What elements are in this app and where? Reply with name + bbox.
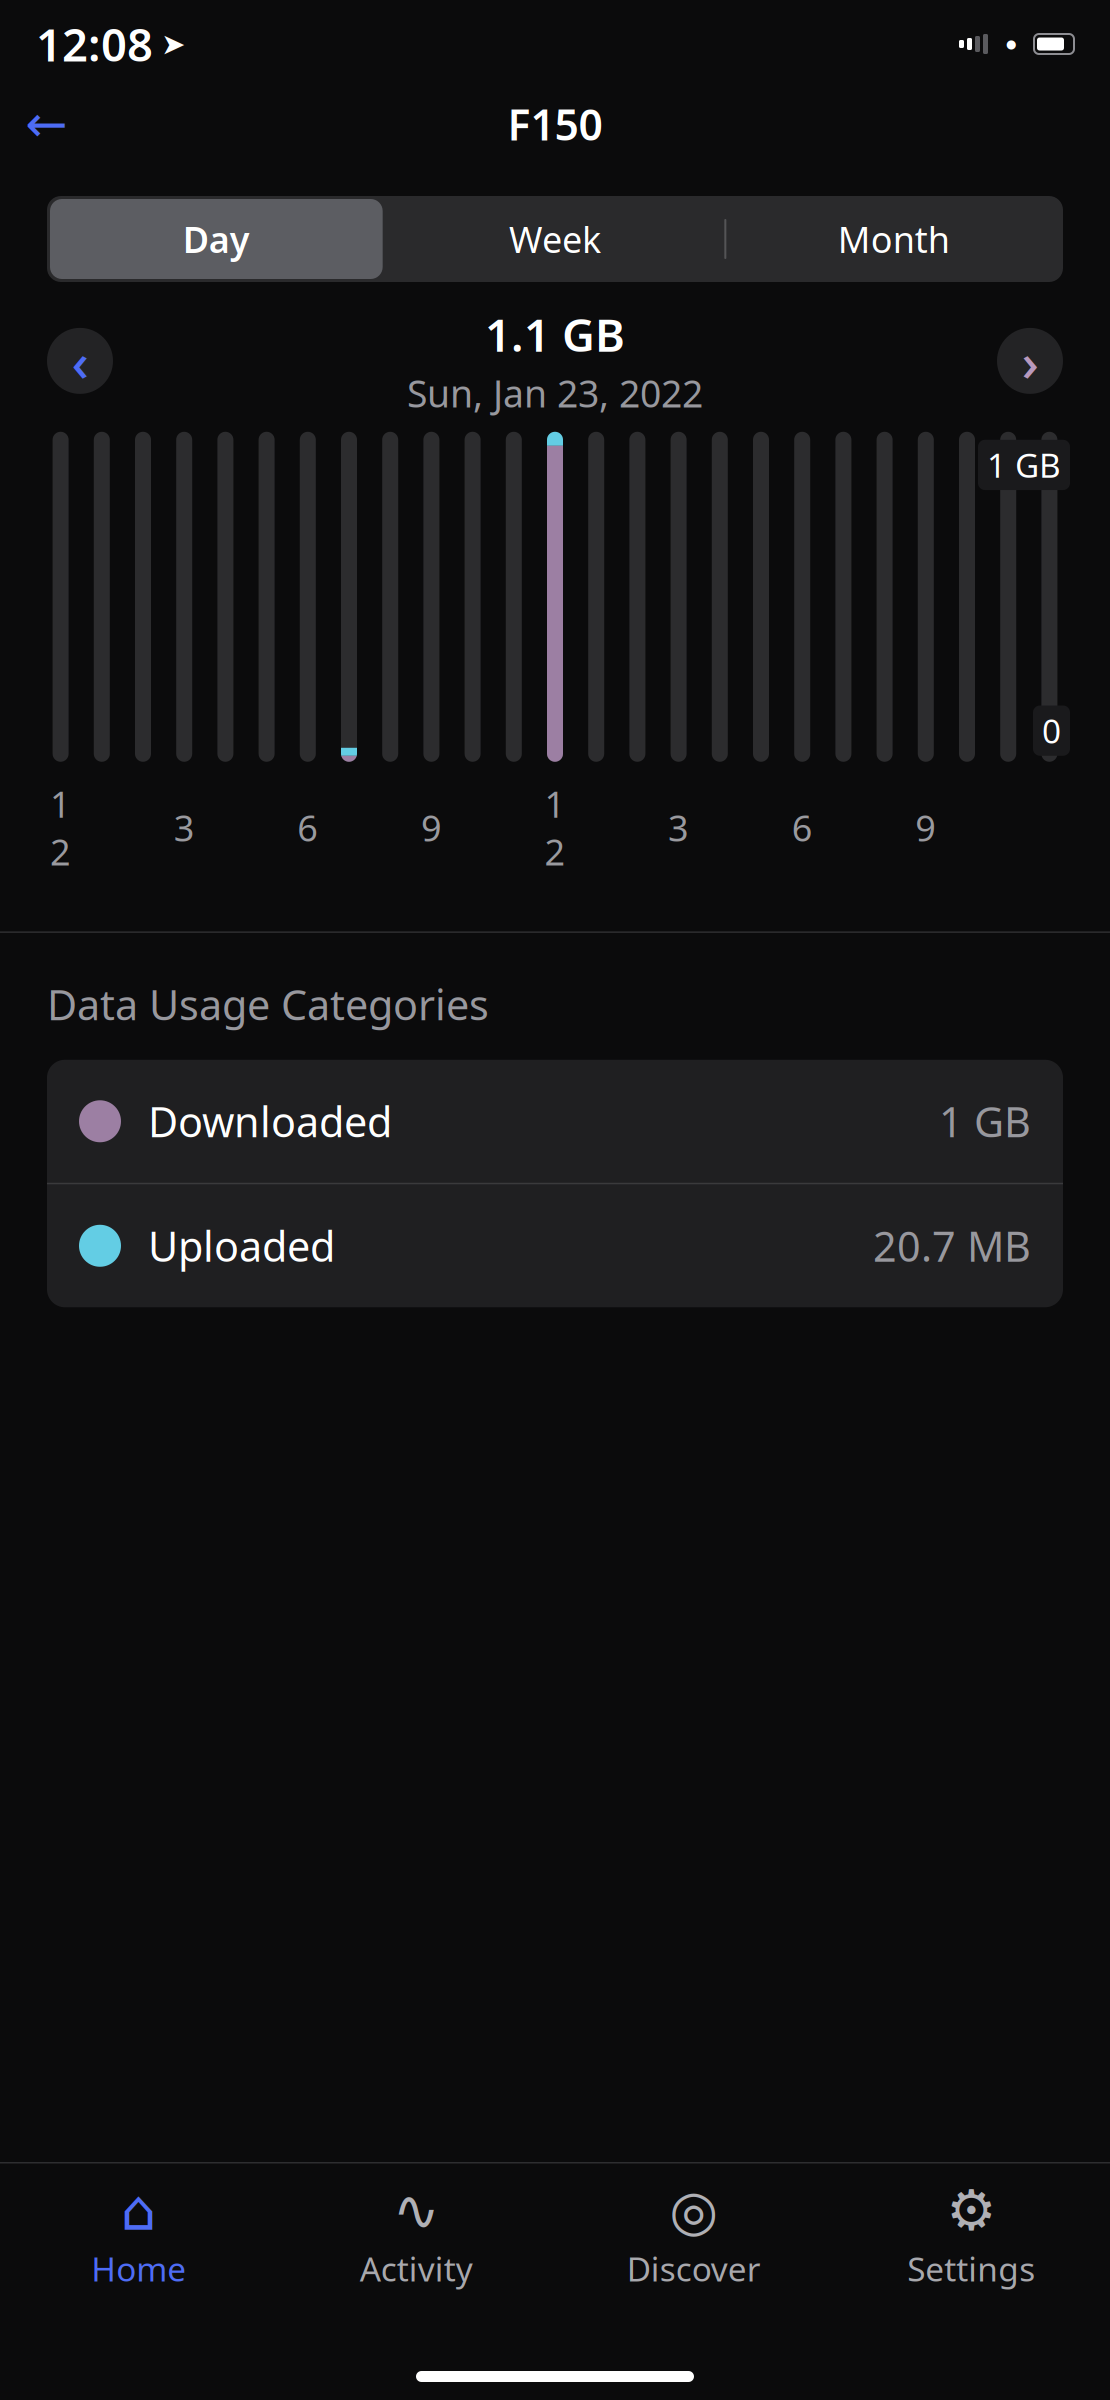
staticText: Day [183, 215, 250, 263]
staticText: 6 [297, 804, 318, 851]
staticText: 12 [50, 780, 71, 875]
button[interactable]: ◎ [555, 2177, 832, 2297]
staticText: ● [1006, 37, 1016, 51]
staticText: Home [91, 2246, 186, 2291]
staticText: ⚙ [946, 2179, 996, 2242]
staticText: Uploaded [148, 1218, 335, 1273]
staticText: Week [509, 215, 601, 263]
staticText: F150 [507, 96, 602, 152]
button[interactable]: Previous day [40, 321, 120, 401]
staticText: 3 [668, 804, 689, 851]
staticText: 0 [1042, 708, 1061, 753]
button[interactable]: ⚙ [832, 2177, 1110, 2297]
button[interactable]: ∿ [277, 2177, 555, 2297]
staticText: 1 GB [987, 443, 1061, 487]
staticText: 6 [792, 804, 813, 851]
staticText: 1 GB [939, 1094, 1031, 1149]
staticText: Sun, Jan 23, 2022 [407, 368, 703, 418]
button[interactable]: Day [47, 196, 386, 282]
button[interactable]: Downloaded [47, 1060, 1063, 1183]
button[interactable]: Month [724, 196, 1063, 282]
staticText: Discover [627, 2246, 761, 2291]
staticText: 1.1 GB [485, 304, 625, 364]
staticText: 20.7 MB [873, 1218, 1031, 1273]
staticText: Data Usage Categories [47, 977, 489, 1032]
button[interactable]: Back [18, 96, 74, 152]
staticText: ← [25, 95, 67, 153]
button[interactable]: Next day [990, 321, 1070, 401]
staticText: ⌂ [121, 2179, 157, 2242]
staticText: ◎ [669, 2179, 718, 2242]
staticText: 9 [421, 804, 442, 851]
staticText: › [1021, 325, 1038, 396]
staticText: Activity [360, 2246, 473, 2291]
staticText: Downloaded [148, 1094, 392, 1149]
staticText: Settings [907, 2246, 1035, 2291]
button[interactable]: ⌂ [0, 2177, 277, 2297]
staticText: 12:08 [36, 14, 153, 74]
staticText: ➤ [161, 27, 186, 61]
staticText: 12 [544, 780, 565, 875]
staticText: 3 [174, 804, 195, 851]
staticText: ‹ [71, 325, 88, 396]
staticText: ∿ [393, 2179, 440, 2242]
button[interactable]: Week [386, 196, 724, 282]
staticText: 9 [915, 804, 936, 851]
button[interactable]: Uploaded [47, 1184, 1063, 1307]
staticText: Month [838, 215, 950, 263]
